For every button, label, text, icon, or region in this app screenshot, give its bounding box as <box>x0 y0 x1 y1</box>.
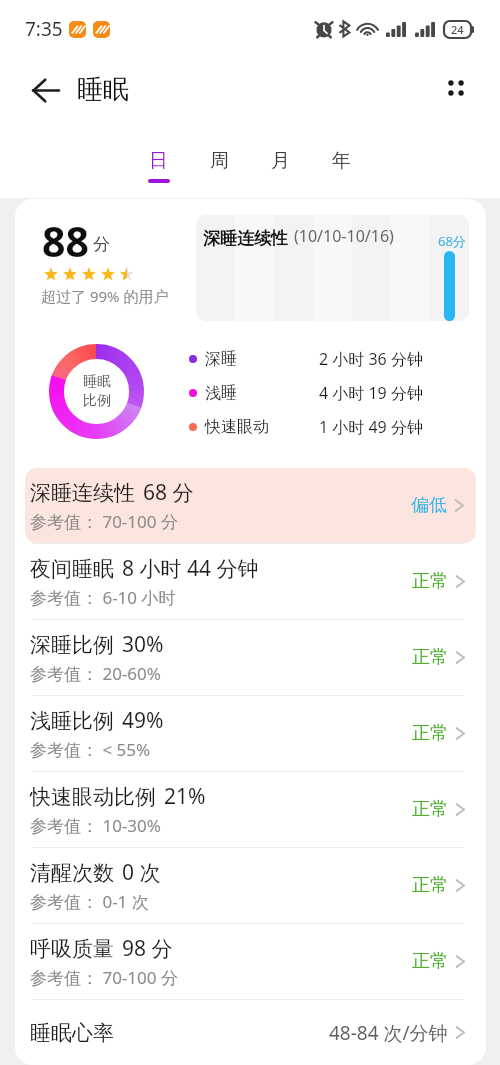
staticText: 睡眠 <box>83 373 111 391</box>
staticText: 年 <box>332 149 351 173</box>
button[interactable]: More options <box>433 65 479 111</box>
staticText: 正常 <box>412 798 448 821</box>
staticText: 快速眼动比例 <box>30 784 156 810</box>
staticText: 1 小时 49 分钟 <box>319 416 423 438</box>
staticText: 睡眠 <box>77 73 129 106</box>
staticText: 参考值： 70-100 分 <box>30 510 178 533</box>
button[interactable]: Back <box>23 67 69 113</box>
staticText: 参考值： < 55% <box>30 738 151 761</box>
button[interactable]: 清醒次数 <box>15 848 486 923</box>
staticText: 正常 <box>412 570 448 593</box>
staticText: 参考值： 10-30% <box>30 814 161 837</box>
staticText: 周 <box>210 149 229 173</box>
staticText: 48-84 次/分钟 <box>329 1020 448 1046</box>
button[interactable]: 日 <box>143 138 174 183</box>
staticText: 夜间睡眠 <box>30 556 114 582</box>
staticText: 呼吸质量 <box>30 936 114 962</box>
staticText: 深睡连续性 <box>30 480 135 506</box>
staticText: 68分 <box>438 232 466 250</box>
staticText: 正常 <box>412 646 448 669</box>
staticText: 88 <box>42 213 89 269</box>
button[interactable]: 深睡比例 <box>15 620 486 695</box>
staticText: 49% <box>122 706 164 735</box>
staticText: 4 小时 19 分钟 <box>319 382 423 404</box>
staticText: 7:35 <box>25 16 63 42</box>
staticText: 深睡比例 <box>30 632 114 658</box>
button[interactable]: 深睡连续性 <box>25 468 476 543</box>
staticText: 参考值： 20-60% <box>30 662 161 685</box>
staticText: 深睡连续性 <box>203 228 288 249</box>
staticText: 30% <box>122 630 164 659</box>
staticText: 98 分 <box>122 934 173 963</box>
staticText: 比例 <box>83 392 111 410</box>
staticText: 2 小时 36 分钟 <box>319 348 423 370</box>
staticText: (10/10-10/16) <box>294 225 394 247</box>
staticText: 睡眠心率 <box>30 1020 114 1046</box>
button[interactable]: 夜间睡眠 <box>15 544 486 619</box>
staticText: 0 次 <box>122 858 161 887</box>
staticText: 浅睡比例 <box>30 708 114 734</box>
staticText: 正常 <box>412 722 448 745</box>
staticText: 8 小时 44 分钟 <box>122 554 259 583</box>
staticText: 参考值： 6-10 小时 <box>30 586 176 609</box>
staticText: 参考值： 70-100 分 <box>30 966 178 989</box>
staticText: 偏低 <box>411 494 447 517</box>
button[interactable]: 月 <box>265 138 296 183</box>
button[interactable]: 呼吸质量 <box>15 924 486 999</box>
staticText: 深睡 <box>205 349 237 369</box>
staticText: 日 <box>149 149 168 173</box>
button[interactable]: 年 <box>326 138 357 183</box>
staticText: 浅睡 <box>205 383 237 403</box>
button[interactable]: 深睡连续性 <box>196 215 469 321</box>
staticText: 正常 <box>412 874 448 897</box>
staticText: 68 分 <box>143 478 194 507</box>
staticText: 参考值： 0-1 次 <box>30 890 149 913</box>
button[interactable]: 浅睡比例 <box>15 696 486 771</box>
button[interactable]: 周 <box>204 138 235 183</box>
staticText: 21% <box>164 782 206 811</box>
button[interactable]: 快速眼动比例 <box>15 772 486 847</box>
staticText: 超过了 99% 的用户 <box>41 286 169 306</box>
staticText: 清醒次数 <box>30 860 114 886</box>
button[interactable]: 睡眠心率 <box>15 1000 486 1065</box>
staticText: 分 <box>93 234 110 255</box>
staticText: 正常 <box>412 950 448 973</box>
staticText: 快速眼动 <box>205 417 269 437</box>
staticText: 月 <box>271 149 290 173</box>
staticText: 24 <box>451 22 464 37</box>
